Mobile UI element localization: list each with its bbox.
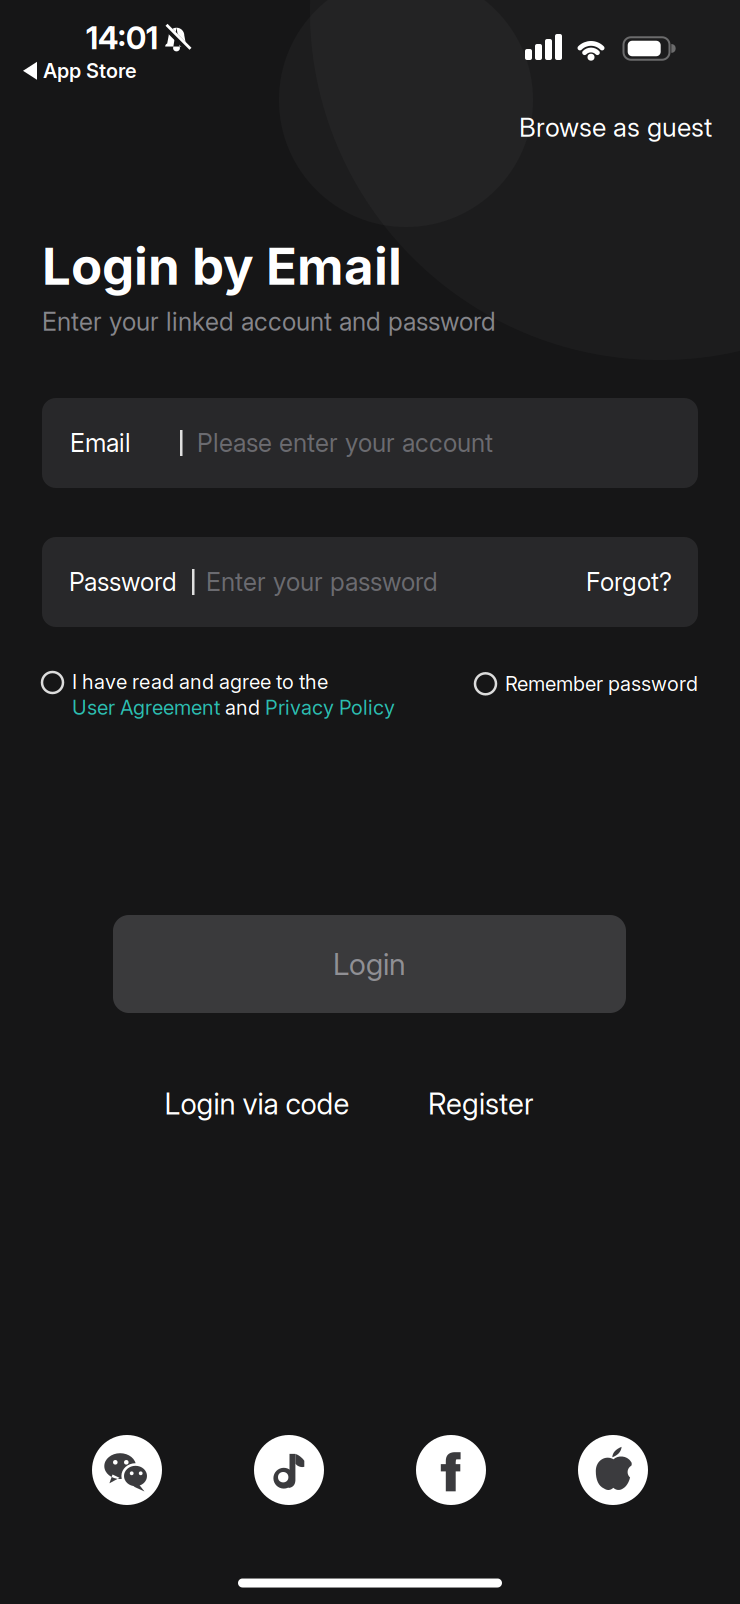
staticText: Please enter your account: [197, 428, 493, 458]
staticText: Browse as guest: [519, 112, 712, 143]
staticText: Login by Email: [42, 236, 402, 296]
staticText: Register: [428, 1087, 534, 1121]
staticText: Enter your password: [206, 567, 438, 597]
button[interactable]: Sign in with WeChat: [92, 1435, 162, 1505]
staticText: App Store: [43, 59, 137, 83]
button[interactable]: Sign in with Facebook: [416, 1435, 486, 1505]
button[interactable]: Login: [113, 915, 626, 1013]
staticText: and: [220, 696, 265, 719]
staticText: Forgot?: [586, 567, 672, 597]
staticText: Remember password: [505, 672, 698, 696]
button[interactable]: User Agreement: [72, 696, 220, 719]
staticText: Password: [69, 567, 177, 597]
button[interactable]: Back to App Store: [23, 59, 137, 83]
button[interactable]: Password: [42, 537, 698, 627]
button[interactable]: Forgot?: [586, 567, 672, 597]
staticText: Privacy Policy: [265, 696, 395, 719]
button[interactable]: Browse as guest: [519, 112, 712, 143]
button[interactable]: Login via code: [164, 1087, 349, 1121]
button[interactable]: Sign in with TikTok: [254, 1435, 324, 1505]
button[interactable]: Email: [42, 398, 698, 488]
staticText: Enter your linked account and password: [42, 307, 496, 336]
button[interactable]: Sign in with Apple: [578, 1435, 648, 1505]
staticText: Login: [333, 946, 406, 982]
staticText: Email: [70, 428, 131, 458]
staticText: Login via code: [164, 1087, 349, 1121]
button[interactable]: Agree to terms: [42, 672, 63, 693]
staticText: I have read and agree to the: [72, 670, 328, 694]
staticText: User Agreement: [72, 696, 220, 719]
button[interactable]: Remember password: [475, 672, 698, 696]
button[interactable]: Register: [428, 1087, 534, 1121]
button[interactable]: Privacy Policy: [265, 696, 395, 719]
staticText: 14:01: [86, 20, 158, 56]
